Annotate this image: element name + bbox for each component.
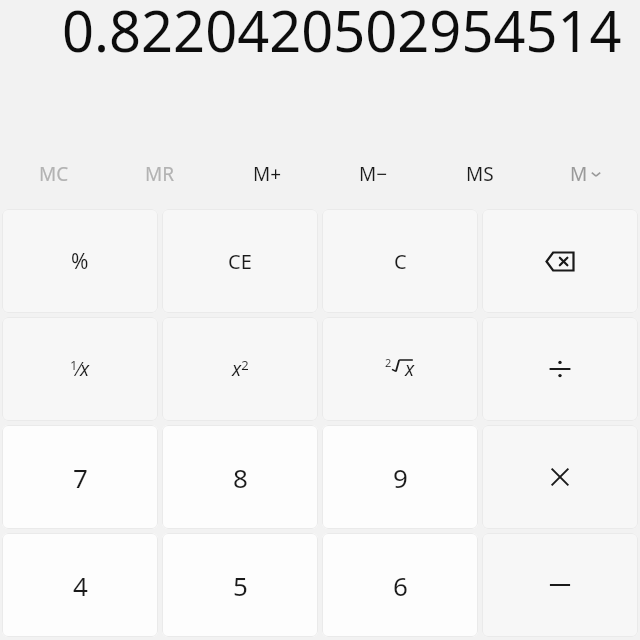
button[interactable]: 5 <box>162 533 318 637</box>
staticText: M <box>570 161 588 187</box>
staticText: MC <box>39 161 69 187</box>
button[interactable]: Subtract <box>482 533 638 637</box>
button[interactable]: Backspace <box>482 209 638 313</box>
button[interactable]: M− <box>320 140 426 207</box>
button[interactable]: 8 <box>162 425 318 529</box>
button[interactable]: x2 <box>162 317 318 421</box>
staticText: C <box>394 248 407 275</box>
staticText: MS <box>466 161 494 187</box>
button[interactable]: Divide <box>482 317 638 421</box>
button[interactable]: 1⁄x <box>2 317 158 421</box>
staticText: 5 <box>233 568 248 603</box>
button[interactable]: Multiply <box>482 425 638 529</box>
staticText: % <box>71 247 89 276</box>
button[interactable]: % <box>2 209 158 313</box>
button[interactable]: MS <box>427 140 533 207</box>
button[interactable]: Square root <box>322 317 478 421</box>
staticText: M− <box>359 161 388 187</box>
staticText: M+ <box>253 161 282 187</box>
staticText: x2 <box>232 356 249 382</box>
button[interactable]: 6 <box>322 533 478 637</box>
button[interactable]: M+ <box>214 140 320 207</box>
staticText: 0.8220420502954514 <box>62 0 622 68</box>
staticText: x <box>405 356 415 382</box>
staticText: 8 <box>233 460 248 495</box>
button[interactable]: MC <box>1 140 107 207</box>
button[interactable]: 4 <box>2 533 158 637</box>
staticText: CE <box>228 248 252 275</box>
staticText: 4 <box>73 568 88 603</box>
staticText: 1⁄x <box>70 356 90 382</box>
staticText: 2 <box>385 355 392 370</box>
staticText: 9 <box>393 460 408 495</box>
button[interactable]: CE <box>162 209 318 313</box>
button[interactable]: M <box>533 140 639 207</box>
button[interactable]: MR <box>107 140 213 207</box>
staticText: MR <box>145 161 175 187</box>
button[interactable]: 9 <box>322 425 478 529</box>
staticText: 7 <box>73 460 88 495</box>
staticText: 6 <box>393 568 408 603</box>
button[interactable]: C <box>322 209 478 313</box>
button[interactable]: 7 <box>2 425 158 529</box>
